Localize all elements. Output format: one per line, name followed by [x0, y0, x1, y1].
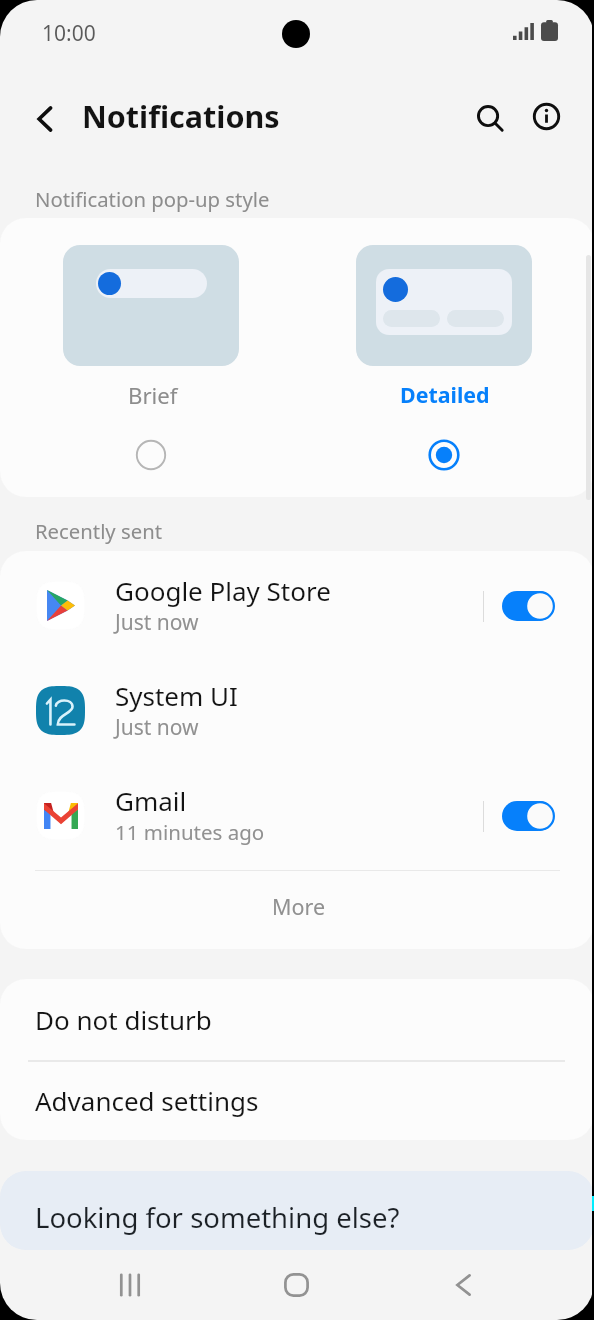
button[interactable] — [0, 658, 594, 763]
button[interactable]: Back — [408, 1253, 519, 1320]
button[interactable]: Toggle Google Play Store — [496, 583, 562, 629]
staticText: Google Play Store — [115, 573, 331, 608]
button[interactable]: Back — [20, 93, 72, 145]
button[interactable]: Toggle Google Play Store — [0, 553, 594, 658]
button[interactable]: Brief — [130, 434, 172, 476]
button[interactable] — [0, 871, 594, 949]
staticText: System UI — [115, 678, 238, 713]
staticText: Notification pop-up style — [35, 185, 270, 213]
staticText: Just now — [115, 608, 199, 637]
staticText: Gmail — [115, 783, 187, 818]
button[interactable] — [0, 1061, 594, 1140]
staticText: Looking for something else? — [35, 1199, 400, 1236]
staticText: Just now — [115, 713, 199, 742]
button[interactable]: Search — [463, 90, 517, 144]
staticText: Recently sent — [35, 517, 163, 545]
button[interactable]: Toggle Gmail — [496, 793, 562, 839]
staticText: Notifications — [82, 95, 280, 137]
button[interactable]: Detailed — [0, 218, 90, 247]
staticText: 11 minutes ago — [115, 818, 265, 846]
button[interactable] — [63, 245, 239, 366]
button[interactable]: Recents — [75, 1253, 186, 1320]
button[interactable]: Toggle Gmail — [0, 763, 594, 868]
button[interactable]: Info — [520, 90, 574, 144]
button[interactable] — [356, 245, 532, 366]
staticText: Advanced settings — [35, 1083, 259, 1118]
button[interactable]: Home — [242, 1253, 353, 1320]
button[interactable]: Detailed — [423, 434, 465, 476]
button[interactable] — [0, 1171, 594, 1250]
staticText: Do not disturb — [35, 1002, 212, 1037]
staticText: More — [272, 892, 326, 921]
staticText: 10:00 — [42, 19, 96, 48]
button[interactable] — [0, 979, 594, 1060]
